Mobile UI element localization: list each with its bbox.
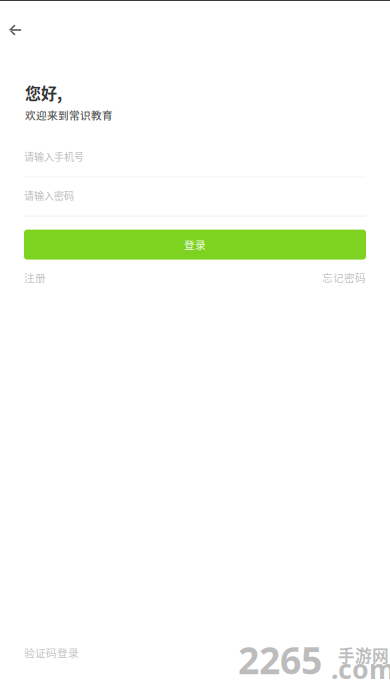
staticText: 欢迎来到常识教育 [25,107,113,123]
staticText: 验证码登录 [24,645,79,660]
staticText: 2265 [238,635,322,685]
staticText: 手游网 [338,643,389,667]
button[interactable]: 注册 [24,270,46,285]
button[interactable]: Back [0,10,35,50]
staticText: 请输入手机号 [24,149,84,164]
staticText: 忘记密码 [322,270,366,285]
staticText: 请输入密码 [24,188,74,203]
button[interactable]: 验证码登录 [24,645,79,660]
staticText: .com [331,651,390,686]
staticText: 注册 [24,270,46,285]
button[interactable]: 登录 [24,230,366,260]
staticText: 登录 [184,237,206,252]
button[interactable]: 忘记密码 [322,270,366,285]
staticText: 您好, [25,81,62,104]
